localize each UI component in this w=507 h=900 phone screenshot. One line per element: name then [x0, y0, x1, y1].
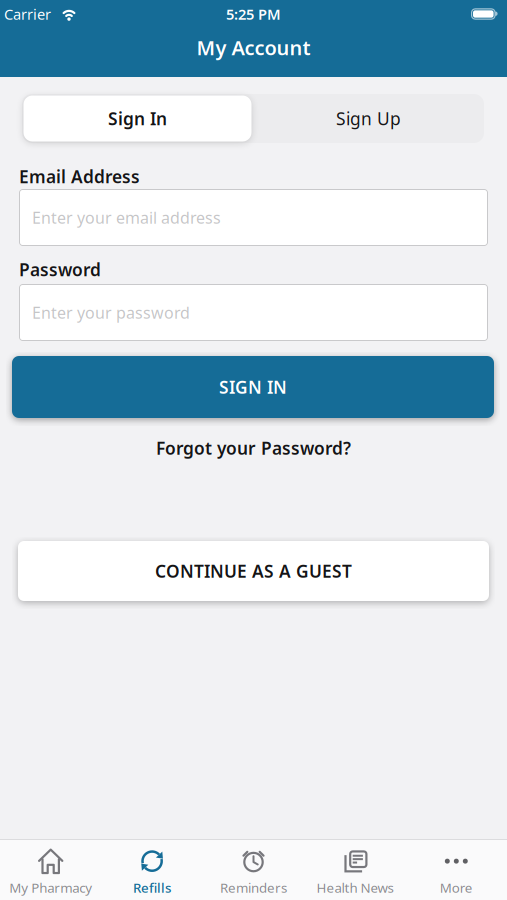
- staticText: SIGN IN: [219, 375, 287, 398]
- staticText: Email Address: [19, 165, 140, 188]
- button[interactable]: More: [406, 840, 507, 900]
- button[interactable]: Health News: [304, 840, 406, 900]
- staticText: My Pharmacy: [9, 879, 92, 896]
- staticText: Sign In: [108, 107, 167, 130]
- staticText: 5:25 PM: [226, 4, 281, 24]
- staticText: Refills: [133, 879, 171, 896]
- button[interactable]: CONTINUE AS A GUEST: [18, 541, 489, 601]
- button[interactable]: Enter your password: [19, 284, 488, 341]
- button[interactable]: Reminders: [203, 840, 304, 900]
- button[interactable]: My Pharmacy: [0, 840, 101, 900]
- staticText: Sign Up: [336, 107, 401, 130]
- staticText: More: [440, 879, 473, 896]
- staticText: Enter your password: [32, 302, 190, 323]
- staticText: My Account: [196, 34, 310, 61]
- button[interactable]: Enter your email address: [19, 189, 488, 246]
- staticText: Health News: [316, 879, 393, 896]
- button[interactable]: Sign Up: [253, 107, 484, 130]
- staticText: Enter your email address: [32, 207, 221, 228]
- button[interactable]: SIGN IN: [12, 356, 494, 418]
- staticText: Reminders: [220, 879, 287, 896]
- staticText: Password: [19, 258, 101, 281]
- button[interactable]: Refills: [101, 840, 203, 900]
- staticText: Carrier: [4, 4, 51, 24]
- button[interactable]: Forgot your Password?: [156, 438, 351, 458]
- staticText: Forgot your Password?: [156, 436, 351, 459]
- staticText: CONTINUE AS A GUEST: [155, 559, 352, 582]
- button[interactable]: Sign In: [22, 94, 253, 143]
